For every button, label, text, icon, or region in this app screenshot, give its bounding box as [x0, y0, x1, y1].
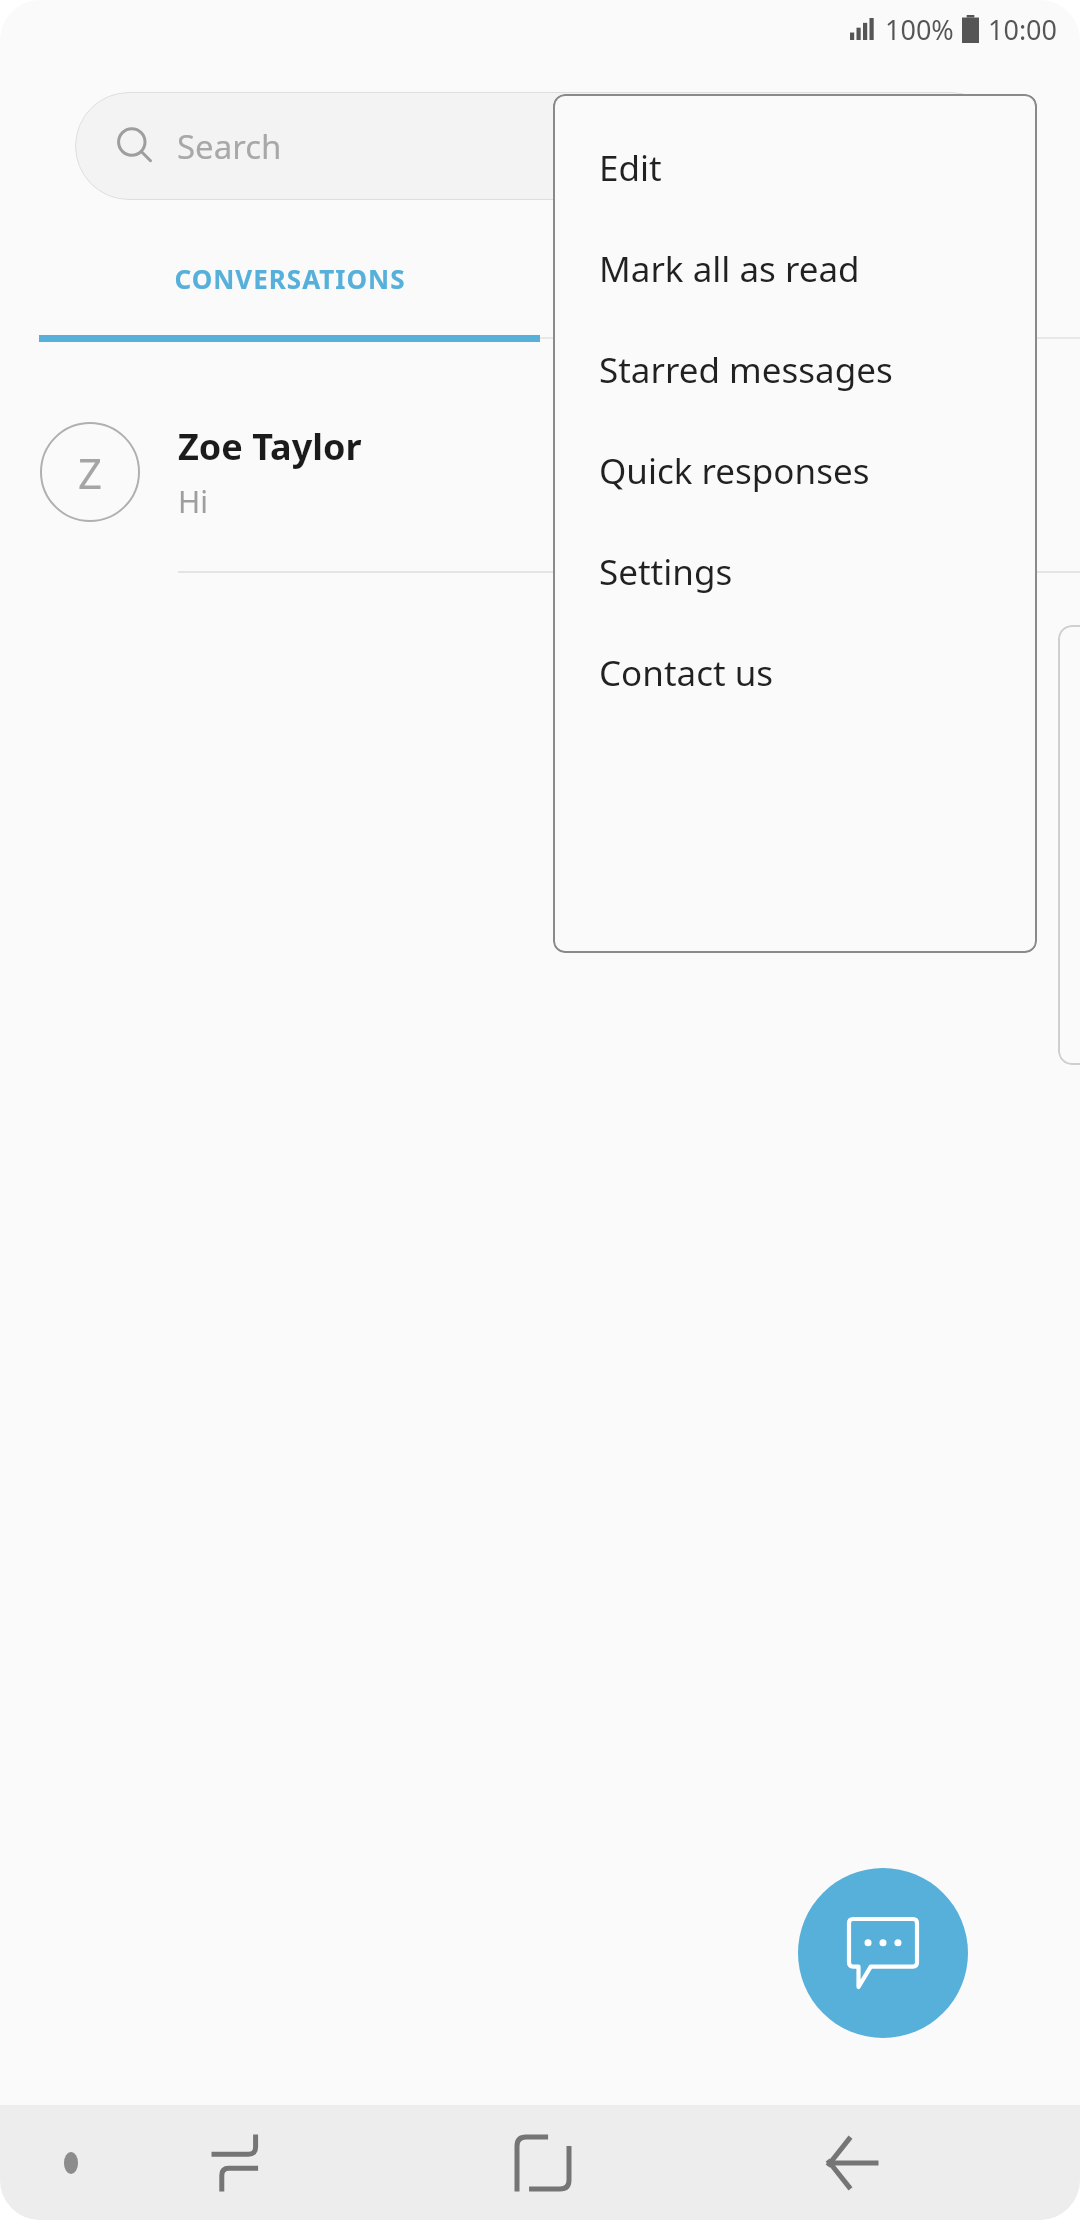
staticText: CONVERSATIONS: [174, 261, 406, 296]
button[interactable]: Menu indicator: [40, 2132, 102, 2194]
staticText: Hi: [178, 481, 208, 522]
staticText: 10:00: [988, 11, 1058, 48]
button[interactable]: Contact us: [553, 622, 1037, 723]
staticText: Contact us: [599, 649, 774, 697]
button[interactable]: New conversation: [798, 1868, 968, 2038]
button[interactable]: Back: [780, 2105, 920, 2220]
staticText: Settings: [599, 548, 733, 596]
button[interactable]: Settings: [553, 521, 1037, 622]
staticText: Starred messages: [599, 346, 893, 394]
button[interactable]: Search: [75, 92, 1005, 200]
button[interactable]: Starred messages: [553, 319, 1037, 420]
staticText: Mark all as read: [599, 245, 860, 293]
staticText: 100%: [885, 11, 954, 48]
button[interactable]: Home: [473, 2105, 613, 2220]
button[interactable]: Recents: [170, 2105, 310, 2220]
staticText: Edit: [599, 144, 662, 192]
button[interactable]: Z: [0, 372, 1080, 572]
staticText: Z: [78, 444, 103, 501]
button[interactable]: Edit: [553, 117, 1037, 218]
staticText: Search: [177, 124, 282, 169]
button[interactable]: Quick responses: [553, 420, 1037, 521]
button[interactable]: Mark all as read: [553, 218, 1037, 319]
button[interactable]: CONVERSATIONS: [39, 225, 540, 342]
staticText: Zoe Taylor: [178, 422, 362, 471]
staticText: Quick responses: [599, 447, 870, 495]
